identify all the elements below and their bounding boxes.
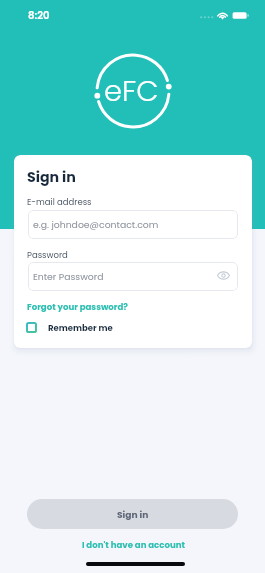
staticText: 8:20 [28, 8, 50, 22]
staticText: Sign in [27, 167, 76, 187]
button[interactable] [27, 499, 238, 529]
staticText: E-mail address [27, 196, 92, 208]
staticText: Forgot your password? [27, 301, 128, 313]
button[interactable] [27, 301, 129, 313]
button[interactable] [28, 210, 238, 239]
staticText: I don't have an account [82, 539, 186, 551]
staticText: eFC [104, 71, 159, 111]
staticText: Password [27, 249, 68, 261]
staticText: Enter Password [33, 270, 104, 283]
button[interactable] [28, 262, 238, 291]
staticText: Sign in [117, 508, 149, 521]
staticText: e.g. johndoe@contact.com [33, 218, 159, 231]
staticText: Remember me [48, 322, 113, 334]
button[interactable] [80, 539, 185, 552]
button[interactable] [26, 320, 112, 335]
other: Show password [217, 271, 230, 280]
